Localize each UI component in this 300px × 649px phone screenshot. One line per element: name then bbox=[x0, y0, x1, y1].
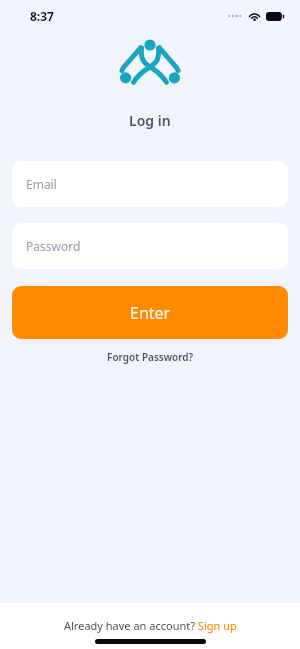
staticText: Log in bbox=[129, 111, 171, 130]
button[interactable]: Forgot Password? bbox=[101, 348, 200, 366]
button[interactable]: Email bbox=[12, 161, 288, 207]
staticText: Email bbox=[26, 176, 57, 192]
staticText: 8:37 bbox=[30, 8, 54, 24]
staticText: Password bbox=[26, 238, 81, 254]
other: App logo bbox=[117, 38, 183, 86]
button[interactable]: Password bbox=[12, 223, 288, 269]
staticText: Already have an account? Sign up bbox=[64, 618, 237, 633]
button[interactable]: Enter bbox=[12, 286, 288, 339]
staticText: Enter bbox=[130, 302, 171, 324]
button[interactable]: Already have an account? Sign up bbox=[64, 618, 237, 633]
staticText: Forgot Password? bbox=[107, 350, 194, 364]
